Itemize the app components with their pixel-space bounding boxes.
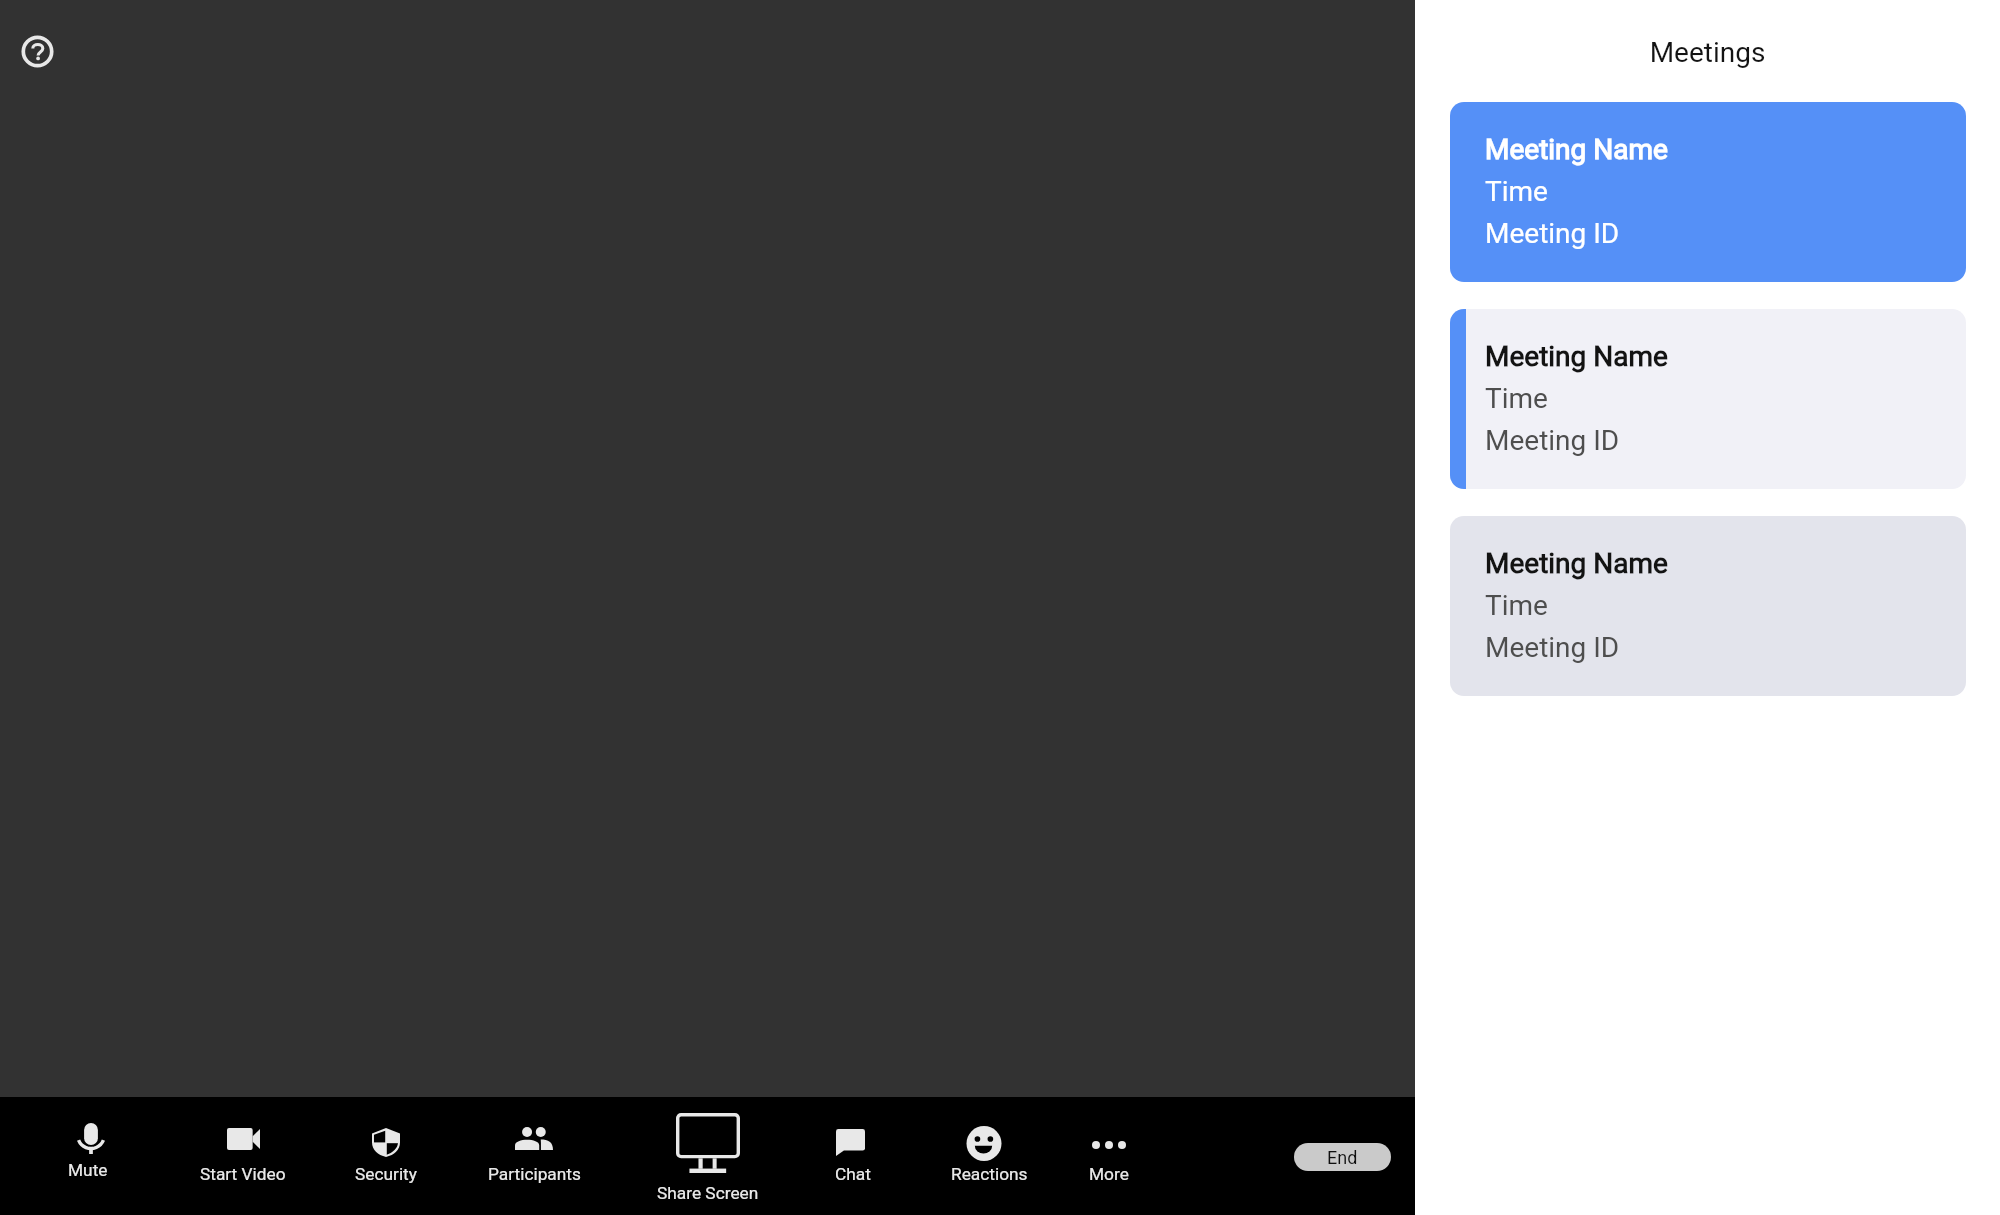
staticText: Chat [835, 1164, 871, 1184]
staticText: Time [1485, 589, 1548, 622]
button[interactable]: Meeting Name [1450, 309, 1966, 489]
staticText: Time [1485, 175, 1548, 208]
staticText: Meetings [1415, 36, 2000, 69]
button[interactable]: Meeting Name [1450, 102, 1966, 282]
staticText: Security [355, 1164, 417, 1184]
button[interactable]: End [1294, 1143, 1391, 1171]
staticText: Reactions [951, 1164, 1028, 1184]
staticText: Participants [488, 1164, 581, 1184]
button[interactable]: Security [322, 1097, 450, 1215]
staticText: Meeting Name [1485, 547, 1668, 580]
staticText: Meeting ID [1485, 631, 1620, 664]
button[interactable]: Meeting Name [1450, 516, 1966, 696]
staticText: Share Screen [657, 1183, 759, 1203]
staticText: Time [1485, 382, 1548, 415]
button[interactable]: Help [21, 35, 54, 68]
staticText: Meeting ID [1485, 424, 1620, 457]
staticText: Meeting ID [1485, 217, 1620, 250]
button[interactable]: Participants [470, 1097, 598, 1215]
button[interactable]: Share Screen [644, 1097, 772, 1215]
staticText: Meeting Name [1485, 340, 1668, 373]
button[interactable]: Mute [27, 1097, 155, 1215]
staticText: Start Video [200, 1164, 286, 1184]
button[interactable]: More [1045, 1097, 1173, 1215]
staticText: More [1089, 1164, 1129, 1184]
button[interactable]: Start Video [179, 1097, 307, 1215]
button[interactable]: Chat [786, 1097, 914, 1215]
staticText: Meeting Name [1485, 133, 1668, 166]
staticText: End [1327, 1147, 1358, 1168]
button[interactable]: Reactions [920, 1097, 1048, 1215]
staticText: Mute [68, 1160, 108, 1180]
